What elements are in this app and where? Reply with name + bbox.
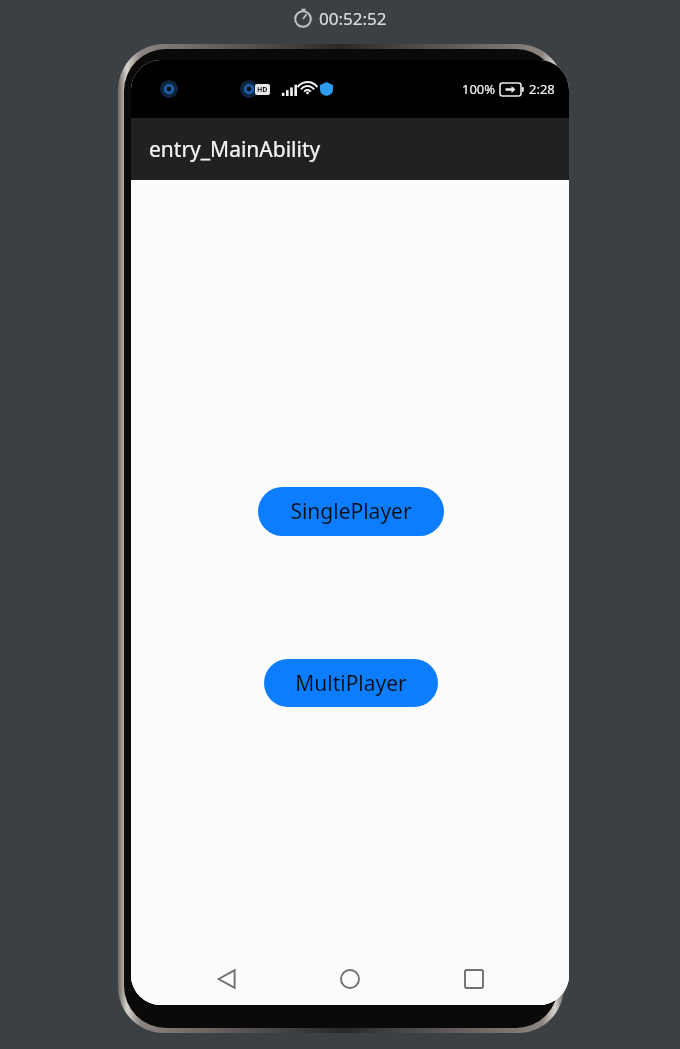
staticText: 100% — [462, 80, 496, 98]
staticText: entry_MainAbility — [149, 135, 321, 164]
staticText: 2:28 — [529, 80, 555, 98]
button[interactable]: MultiPlayer — [264, 659, 438, 707]
button[interactable]: Recent apps — [446, 953, 502, 1005]
staticText: 00:52:52 — [319, 7, 387, 30]
button[interactable]: Back — [199, 953, 255, 1005]
staticText: SinglePlayer — [290, 497, 412, 526]
button[interactable]: Home — [322, 953, 378, 1005]
staticText: HD — [257, 85, 268, 95]
button[interactable]: SinglePlayer — [258, 487, 444, 536]
staticText: MultiPlayer — [295, 669, 407, 698]
